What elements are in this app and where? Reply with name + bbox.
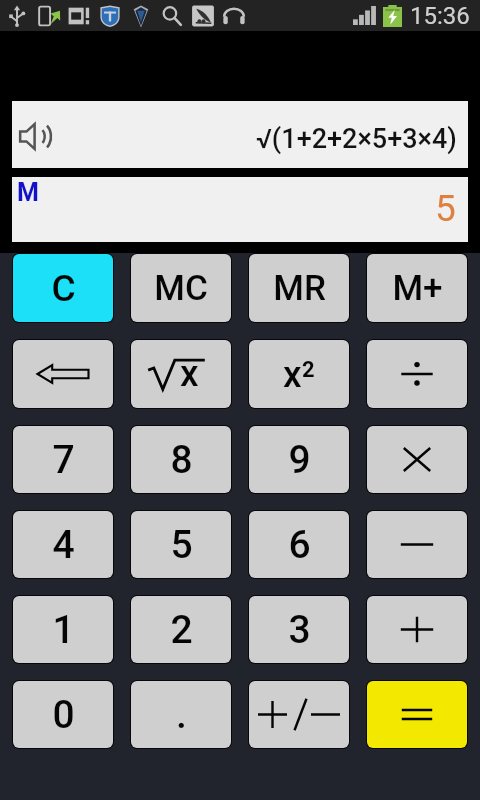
- staticText: C: [51, 267, 76, 310]
- button[interactable]: 8: [131, 426, 231, 493]
- button[interactable]: MR: [249, 254, 349, 322]
- button[interactable]: 7: [13, 426, 113, 493]
- staticText: MC: [154, 268, 208, 309]
- staticText: √(1+2+2×5+3×4): [256, 123, 457, 155]
- button[interactable]: 2: [131, 596, 231, 663]
- button[interactable]: MC: [131, 254, 231, 322]
- staticText: 4: [52, 522, 75, 568]
- button[interactable]: Multiply: [367, 426, 467, 493]
- staticText: 15:36: [410, 2, 470, 30]
- staticText: 3: [288, 607, 311, 653]
- staticText: 2: [302, 357, 315, 383]
- button[interactable]: .: [131, 681, 231, 748]
- button[interactable]: Add: [367, 596, 467, 663]
- button[interactable]: Backspace: [13, 340, 113, 408]
- staticText: 5: [170, 522, 193, 568]
- staticText: x: [283, 353, 302, 396]
- staticText: M: [17, 178, 39, 207]
- button[interactable]: Plus or minus: [249, 681, 349, 748]
- button[interactable]: Equals: [367, 681, 467, 748]
- button[interactable]: 6: [249, 511, 349, 578]
- button[interactable]: Square root: [131, 340, 231, 408]
- button[interactable]: 1: [13, 596, 113, 663]
- button[interactable]: Square: [249, 340, 349, 408]
- button[interactable]: 0: [13, 681, 113, 748]
- staticText: 6: [288, 522, 311, 568]
- staticText: .: [176, 692, 187, 738]
- staticText: 5: [435, 187, 456, 230]
- button[interactable]: 5: [131, 511, 231, 578]
- button[interactable]: 9: [249, 426, 349, 493]
- staticText: 8: [170, 437, 193, 483]
- staticText: 0: [52, 692, 75, 738]
- staticText: M+: [392, 268, 443, 309]
- staticText: x: [180, 352, 199, 395]
- staticText: 7: [52, 437, 75, 483]
- button[interactable]: Subtract: [367, 511, 467, 578]
- staticText: MR: [273, 268, 326, 309]
- button[interactable]: 3: [249, 596, 349, 663]
- button[interactable]: 4: [13, 511, 113, 578]
- other: Speak expression: [19, 122, 58, 151]
- staticText: 2: [170, 607, 193, 653]
- staticText: 1: [52, 607, 75, 653]
- button[interactable]: M+: [367, 254, 467, 322]
- button[interactable]: Divide: [367, 340, 467, 408]
- staticText: 9: [288, 437, 311, 483]
- button[interactable]: C: [13, 254, 113, 322]
